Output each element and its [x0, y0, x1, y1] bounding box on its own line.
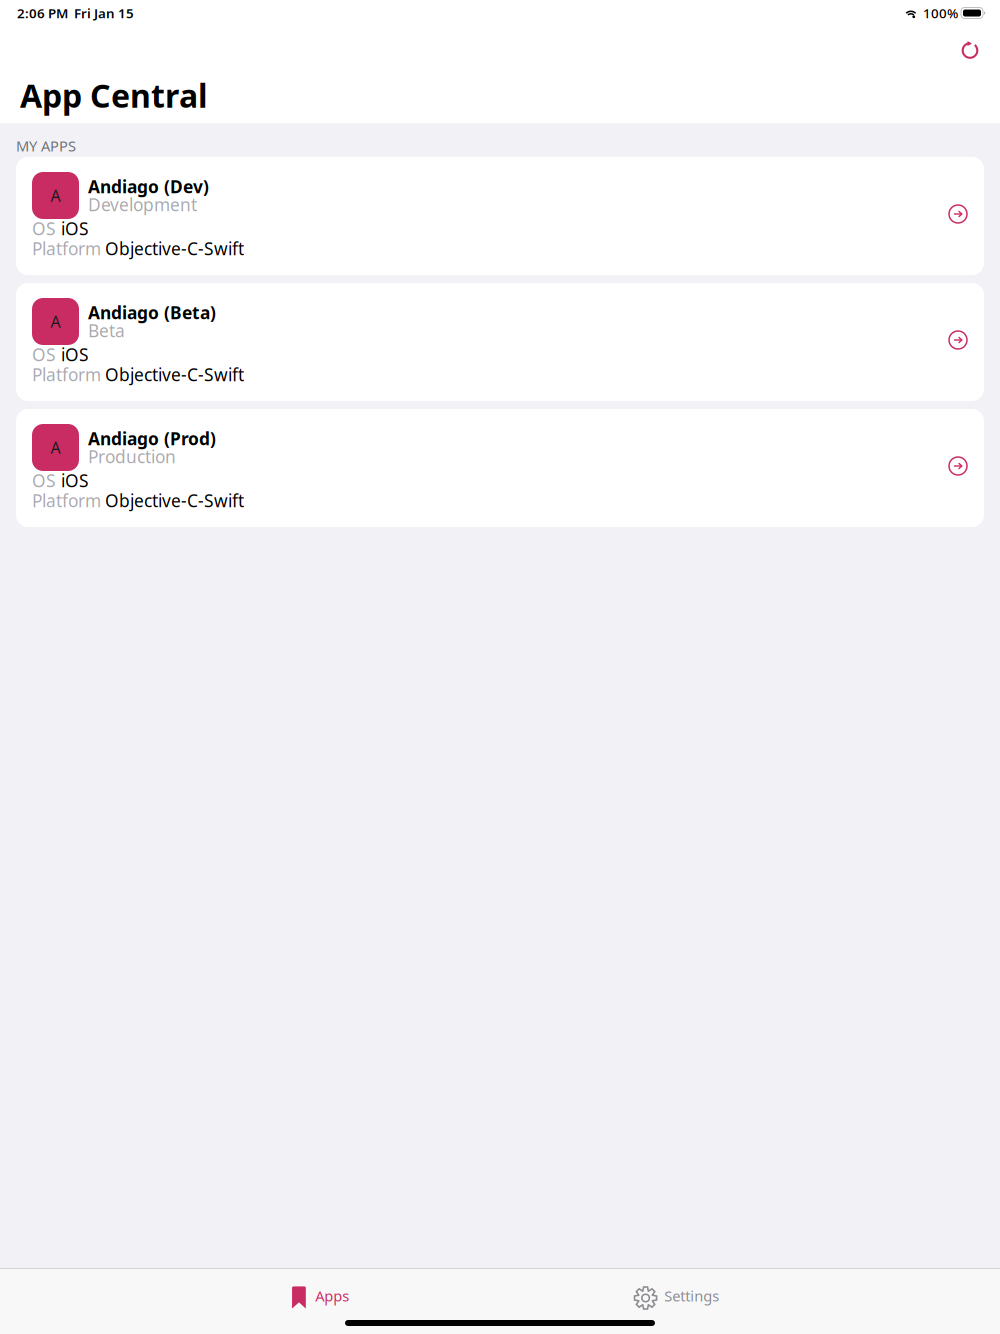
staticText: OS [32, 343, 56, 366]
staticText: iOS [61, 217, 89, 240]
staticText: Andiago (Prod) [88, 427, 216, 450]
staticText: iOS [61, 343, 89, 366]
staticText: OS [32, 469, 56, 492]
staticText: Beta [88, 319, 125, 342]
staticText: App Central [20, 74, 208, 116]
staticText: A [50, 185, 60, 206]
staticText: Objective-C-Swift [105, 489, 244, 512]
staticText: OS [32, 217, 56, 240]
staticText: Objective-C-Swift [105, 363, 244, 386]
staticText: Andiago (Beta) [88, 301, 216, 324]
staticText: 2:06 PM [17, 4, 68, 22]
staticText: Objective-C-Swift [105, 237, 244, 260]
staticText: MY APPS [16, 136, 76, 155]
button[interactable]: Apps [280, 1269, 361, 1315]
staticText: iOS [61, 469, 89, 492]
staticText: Platform [32, 237, 101, 260]
button[interactable]: A [16, 157, 984, 275]
staticText: Platform [32, 489, 101, 512]
staticText: Platform [32, 363, 101, 386]
staticText: Fri Jan 15 [74, 4, 134, 22]
staticText: Apps [315, 1286, 349, 1305]
staticText: Settings [664, 1286, 719, 1305]
staticText: 100% [923, 4, 958, 22]
button[interactable]: A [16, 283, 984, 401]
staticText: Development [88, 193, 197, 216]
staticText: Production [88, 445, 176, 468]
staticText: A [50, 437, 60, 458]
button[interactable]: Settings [626, 1269, 735, 1315]
staticText: Andiago (Dev) [88, 175, 209, 198]
staticText: A [50, 311, 60, 332]
button[interactable]: A [16, 409, 984, 527]
button[interactable]: Refresh [947, 26, 993, 66]
